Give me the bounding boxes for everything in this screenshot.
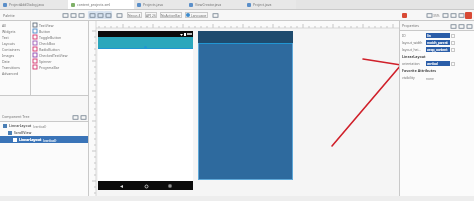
button[interactable]: Text [0, 34, 30, 40]
staticText: layout_width [402, 40, 423, 45]
staticText: Nexus 4 [128, 13, 141, 17]
button[interactable]: Search properties [449, 22, 457, 30]
staticText: Transitions [2, 65, 20, 70]
staticText: Spinner [39, 59, 52, 64]
staticText: none [426, 76, 434, 80]
staticText: All [2, 23, 7, 28]
staticText: (vertical) [43, 138, 57, 142]
staticText: Advanced [2, 71, 19, 76]
staticText: Component Tree [2, 114, 30, 119]
staticText: Language [191, 13, 207, 17]
button[interactable]: Transitions [0, 64, 30, 70]
button[interactable]: Date [0, 58, 30, 64]
button[interactable]: Collapse all [71, 113, 79, 121]
staticText: vertical [427, 62, 438, 66]
button[interactable]: Zoom in [449, 11, 457, 19]
button[interactable]: LinearLayout [0, 136, 88, 143]
staticText: visibility [402, 75, 415, 80]
staticText: ProgressBar [39, 65, 60, 70]
button[interactable]: Layouts [0, 40, 30, 46]
button[interactable]: ViewCreator.java [186, 0, 244, 9]
button[interactable]: Advanced [0, 70, 30, 76]
staticText: Text [2, 35, 9, 40]
staticText: ViewCreator.java [195, 2, 222, 7]
button[interactable]: Images [0, 52, 30, 58]
button[interactable]: Projects.java [134, 0, 186, 9]
button[interactable]: Pan [457, 11, 465, 19]
button[interactable]: Language [185, 12, 208, 18]
staticText: lin [427, 34, 431, 38]
staticText: CheckBox [39, 41, 56, 46]
button[interactable]: API 26 [145, 12, 157, 18]
staticText: Project.java [253, 2, 272, 7]
button[interactable]: Tree options [79, 113, 87, 121]
staticText: wrap_content [427, 48, 448, 52]
button[interactable]: Home [144, 184, 148, 188]
button[interactable]: Design mode [88, 11, 96, 19]
button[interactable]: Zoom to fit [425, 11, 433, 19]
button[interactable]: CheckBox [31, 40, 88, 46]
button[interactable]: Search [61, 11, 69, 19]
button[interactable]: NoActionBar [160, 12, 182, 18]
button[interactable]: Back [119, 184, 123, 188]
button[interactable]: Project.java [244, 0, 296, 9]
staticText: LinearLayout [19, 137, 42, 142]
staticText: orientation [402, 61, 420, 66]
staticText: TextView [39, 23, 54, 28]
button[interactable]: ScrollView [0, 129, 88, 136]
button[interactable]: Widgets [0, 28, 30, 34]
button[interactable]: Rotate [115, 11, 123, 19]
button[interactable]: RadioButton [31, 46, 88, 52]
button[interactable]: Spinner [31, 58, 88, 64]
button[interactable]: layout_hei... [400, 46, 474, 53]
staticText: layout_hei... [402, 47, 421, 52]
staticText: CheckedTextView [39, 53, 68, 58]
button[interactable]: Filter [69, 11, 77, 19]
staticText: ToggleButton [39, 35, 62, 40]
staticText: RadioButton [39, 47, 60, 52]
staticText: ScrollView [14, 130, 32, 135]
button[interactable]: ProjectAddDialog.java [0, 0, 68, 9]
staticText: Images [2, 53, 15, 58]
staticText: Properties [402, 23, 419, 28]
button[interactable]: orientation [400, 60, 474, 67]
staticText: 35% [433, 13, 440, 17]
button[interactable]: CheckedTextView [31, 52, 88, 58]
button[interactable]: content_projects.xml [68, 0, 134, 9]
staticText: Containers [2, 47, 20, 52]
staticText: Layouts [2, 41, 15, 46]
staticText: LinearLayout [9, 123, 32, 128]
staticText: content_projects.xml [77, 2, 111, 7]
button[interactable]: Blueprint mode [96, 11, 104, 19]
staticText: (vertical) [33, 124, 47, 128]
button[interactable]: View options [465, 22, 473, 30]
staticText: ID [402, 33, 406, 38]
staticText: NoActionBar [161, 13, 181, 17]
button[interactable]: More options [211, 11, 219, 19]
button[interactable]: Sort [457, 22, 465, 30]
staticText: Date [2, 59, 10, 64]
staticText: Widgets [2, 29, 16, 34]
button[interactable]: Zoom out [441, 11, 449, 19]
button[interactable]: Errors [465, 12, 472, 19]
staticText: Favorite Attributes [402, 68, 437, 73]
button[interactable]: Button [31, 28, 88, 34]
button[interactable]: ProgressBar [31, 64, 88, 70]
staticText: match_parent [427, 41, 448, 45]
staticText: Button [39, 29, 51, 34]
button[interactable]: Containers [0, 46, 30, 52]
button[interactable]: Recents [168, 184, 172, 188]
staticText: Projects.java [143, 2, 164, 7]
button[interactable]: layout_width [400, 39, 474, 46]
button[interactable]: visibility [400, 74, 474, 81]
button[interactable]: Nexus 4 [127, 12, 142, 18]
button[interactable]: All [0, 22, 30, 28]
button[interactable]: Layout [77, 11, 85, 19]
button[interactable]: TextView [31, 22, 88, 28]
staticText: API 26 [146, 13, 156, 17]
button[interactable]: LinearLayout [0, 122, 88, 129]
button[interactable]: Both modes [104, 11, 112, 19]
button[interactable]: ID [400, 32, 474, 39]
button[interactable]: ToggleButton [31, 34, 88, 40]
